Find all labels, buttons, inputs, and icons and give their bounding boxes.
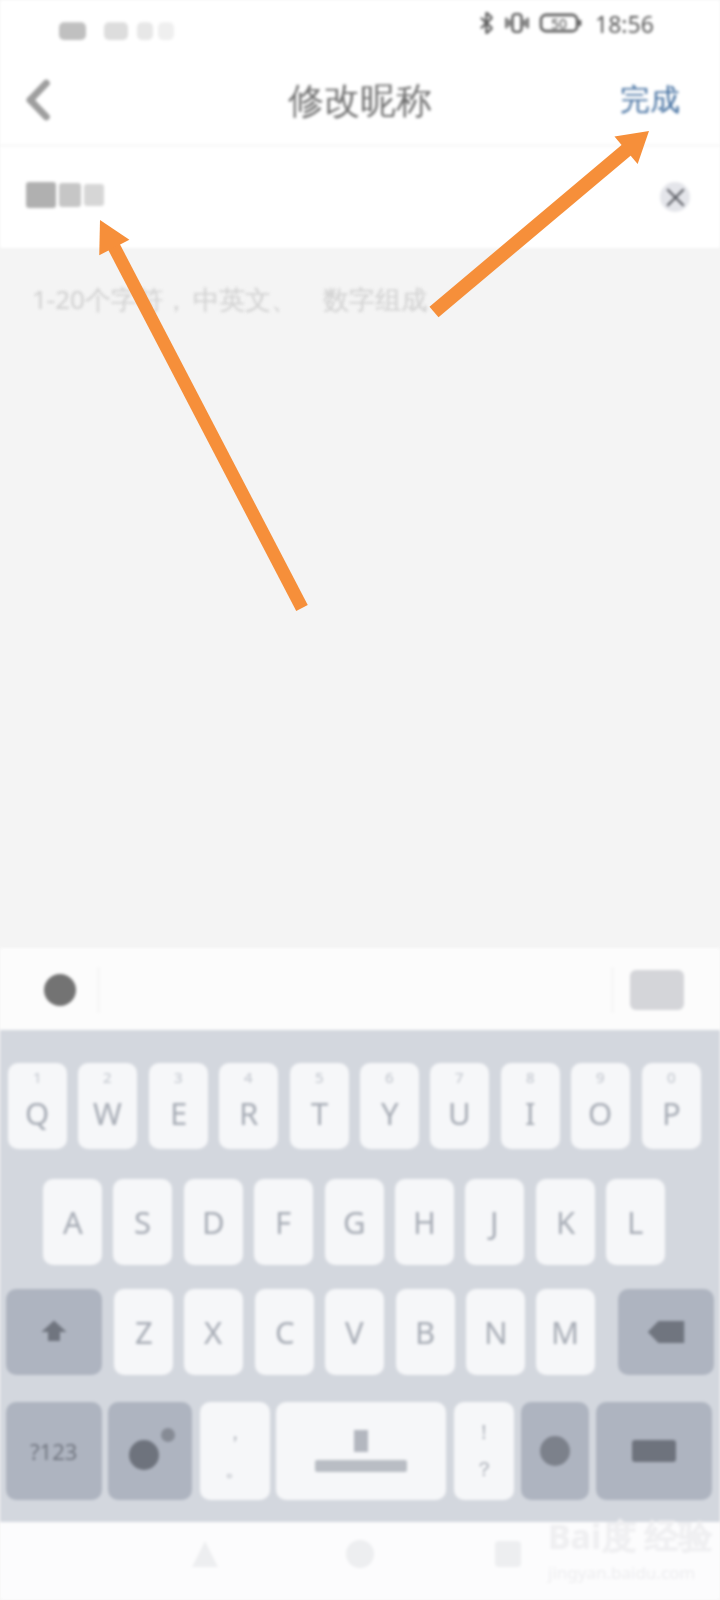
- button[interactable]: B: [396, 1289, 455, 1375]
- staticText: 1-20个字符， 中英文、 数字组成: [32, 281, 428, 317]
- button[interactable]: 完成: [590, 65, 720, 135]
- staticText: 9: [596, 1067, 605, 1087]
- button[interactable]: V: [325, 1289, 384, 1375]
- staticText: 。: [225, 1457, 245, 1482]
- staticText: O: [588, 1092, 613, 1134]
- button[interactable]: A: [43, 1179, 102, 1265]
- button[interactable]: Space: [276, 1402, 446, 1500]
- button[interactable]: 9: [571, 1063, 630, 1149]
- button[interactable]: Clear text: [660, 182, 690, 212]
- button[interactable]: Back: [2, 64, 74, 136]
- button[interactable]: S: [113, 1179, 172, 1265]
- staticText: 0: [667, 1067, 676, 1087]
- staticText: U: [448, 1092, 471, 1134]
- button[interactable]: Symbols: [6, 1402, 102, 1500]
- staticText: A: [63, 1201, 83, 1243]
- button[interactable]: 2: [78, 1063, 137, 1149]
- button[interactable]: J: [465, 1179, 524, 1265]
- staticText: ，: [225, 1420, 245, 1445]
- button[interactable]: Home: [325, 1519, 395, 1589]
- button[interactable]: G: [325, 1179, 384, 1265]
- staticText: T: [311, 1092, 329, 1134]
- button[interactable]: 7: [430, 1063, 489, 1149]
- button[interactable]: F: [254, 1179, 313, 1265]
- button[interactable]: 3: [149, 1063, 208, 1149]
- staticText: X: [204, 1311, 223, 1353]
- button[interactable]: K: [536, 1179, 595, 1265]
- staticText: 4: [244, 1067, 253, 1087]
- staticText: B: [415, 1311, 436, 1353]
- staticText: S: [134, 1201, 152, 1243]
- button[interactable]: ！: [454, 1402, 514, 1500]
- button[interactable]: Emoji: [44, 974, 76, 1006]
- button[interactable]: Switch language: [521, 1402, 589, 1500]
- staticText: Q: [25, 1092, 50, 1134]
- button[interactable]: 0: [642, 1063, 701, 1149]
- staticText: V: [345, 1311, 364, 1353]
- staticText: 2: [103, 1067, 112, 1087]
- staticText: H: [413, 1201, 436, 1243]
- button[interactable]: Backspace: [618, 1289, 714, 1375]
- button[interactable]: 1: [8, 1063, 67, 1149]
- button[interactable]: Emoji and settings: [108, 1402, 192, 1500]
- button[interactable]: Recent apps: [473, 1519, 543, 1589]
- staticText: N: [484, 1311, 508, 1353]
- staticText: J: [490, 1201, 499, 1243]
- button[interactable]: 8: [501, 1063, 560, 1149]
- staticText: Y: [381, 1092, 399, 1134]
- button[interactable]: X: [184, 1289, 243, 1375]
- staticText: K: [556, 1201, 576, 1243]
- button[interactable]: ，: [200, 1402, 270, 1500]
- staticText: 1: [33, 1067, 42, 1087]
- button[interactable]: 5: [290, 1063, 349, 1149]
- button[interactable]: 4: [219, 1063, 278, 1149]
- staticText: P: [662, 1092, 681, 1134]
- staticText: I: [525, 1092, 536, 1134]
- staticText: R: [239, 1092, 259, 1134]
- staticText: W: [93, 1092, 122, 1134]
- staticText: D: [202, 1201, 225, 1243]
- staticText: 7: [455, 1067, 464, 1087]
- button[interactable]: Enter: [596, 1402, 712, 1500]
- button[interactable]: Z: [114, 1289, 173, 1375]
- staticText: Z: [135, 1311, 153, 1353]
- button[interactable]: D: [184, 1179, 243, 1265]
- button[interactable]: Shift: [6, 1289, 102, 1375]
- staticText: M: [551, 1311, 580, 1353]
- staticText: Bai度 经验: [548, 1513, 712, 1559]
- staticText: F: [275, 1201, 292, 1243]
- button[interactable]: H: [395, 1179, 454, 1265]
- staticText: 完成: [620, 81, 680, 119]
- staticText: E: [170, 1092, 188, 1134]
- button[interactable]: Hide keyboard: [630, 970, 684, 1010]
- staticText: 6: [385, 1067, 394, 1087]
- staticText: 8: [526, 1067, 535, 1087]
- staticText: 3: [174, 1067, 183, 1087]
- staticText: 50: [551, 14, 568, 33]
- staticText: 5: [315, 1067, 324, 1087]
- staticText: ！: [474, 1420, 494, 1445]
- staticText: ?123: [30, 1436, 78, 1466]
- button[interactable]: 6: [360, 1063, 419, 1149]
- staticText: 18:56: [595, 8, 654, 39]
- staticText: G: [343, 1201, 366, 1243]
- staticText: C: [275, 1311, 295, 1353]
- staticText: L: [627, 1201, 644, 1243]
- button[interactable]: M: [536, 1289, 595, 1375]
- button[interactable]: L: [606, 1179, 665, 1265]
- staticText: 修改昵称: [288, 78, 432, 123]
- staticText: ？: [474, 1457, 494, 1482]
- button[interactable]: N: [466, 1289, 525, 1375]
- button[interactable]: Back: [170, 1519, 240, 1589]
- button[interactable]: C: [255, 1289, 314, 1375]
